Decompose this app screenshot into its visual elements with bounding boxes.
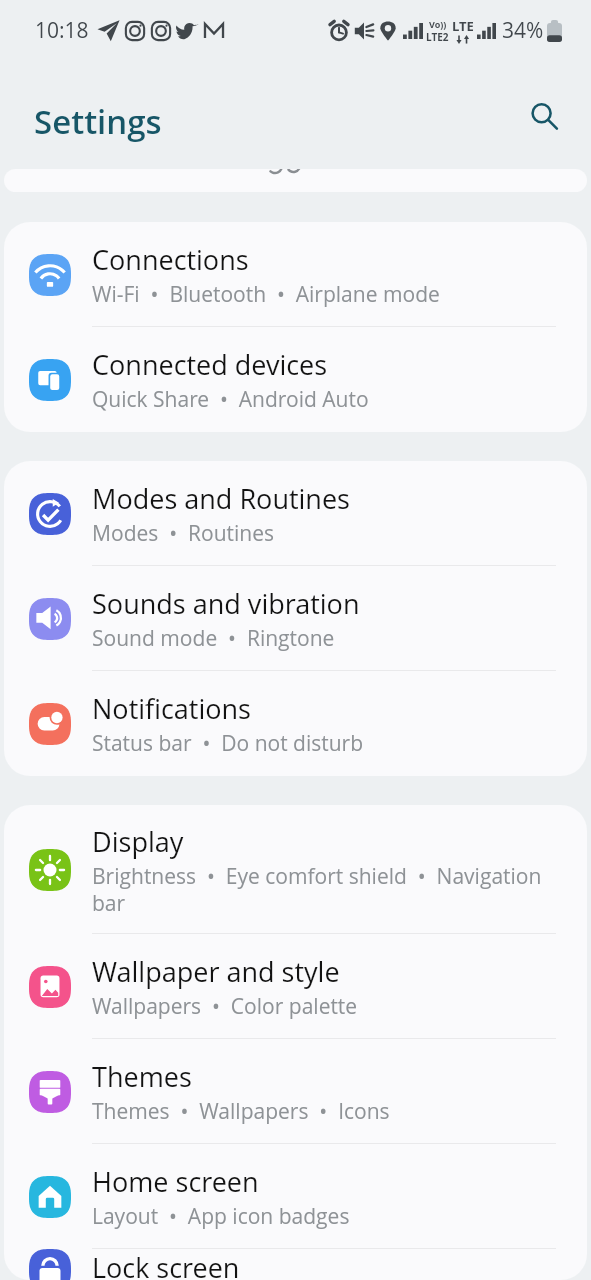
staticText: LTE2	[426, 30, 449, 44]
staticText: Connections	[92, 241, 249, 278]
staticText: Themes	[92, 1058, 192, 1095]
staticText: Sound mode • Ringtone	[92, 624, 335, 653]
staticText: Brightness • Eye comfort shield • Naviga…	[92, 862, 556, 917]
button[interactable]: Themes	[4, 1039, 587, 1144]
staticText: Connected devices	[92, 346, 328, 383]
button[interactable]: Display	[4, 805, 587, 934]
button[interactable]: Connections	[4, 222, 587, 327]
button[interactable]: Search	[520, 92, 568, 140]
button[interactable]: Wallpaper and style	[4, 934, 587, 1039]
staticText: Vo))	[429, 18, 447, 30]
staticText: Quick Share • Android Auto	[92, 385, 369, 414]
staticText: Modes • Routines	[92, 519, 274, 548]
staticText: Status bar • Do not disturb	[92, 729, 364, 758]
staticText: Settings	[34, 99, 162, 144]
button[interactable]: Sounds and vibration	[4, 566, 587, 671]
button[interactable]: Home screen	[4, 1144, 587, 1249]
button[interactable]: Modes and Routines	[4, 461, 587, 566]
staticText: 34%	[502, 16, 544, 45]
staticText: Notifications	[92, 690, 251, 727]
staticText: LTE	[452, 17, 474, 35]
button[interactable]: Connected devices	[4, 327, 587, 432]
staticText: Modes and Routines	[92, 480, 350, 517]
staticText: Lock screen	[92, 1249, 240, 1280]
staticText: Sounds and vibration	[92, 585, 360, 622]
staticText: Wallpapers • Color palette	[92, 992, 358, 1021]
button[interactable]: Notifications	[4, 671, 587, 776]
staticText: Themes • Wallpapers • Icons	[92, 1097, 390, 1126]
staticText: Display	[92, 823, 184, 860]
staticText: 10:18	[35, 16, 89, 45]
button[interactable]: Lock screen	[4, 1249, 587, 1280]
staticText: Layout • App icon badges	[92, 1202, 350, 1231]
staticText: Home screen	[92, 1163, 259, 1200]
staticText: Wi-Fi • Bluetooth • Airplane mode	[92, 280, 440, 309]
staticText: Wallpaper and style	[92, 953, 340, 990]
